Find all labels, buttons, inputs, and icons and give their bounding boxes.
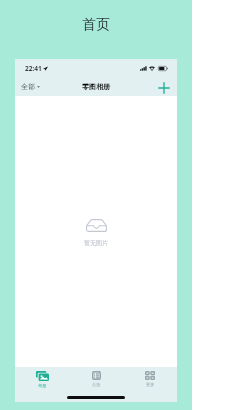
button[interactable]: 更多 <box>123 367 177 391</box>
staticText: 全部 <box>21 82 35 91</box>
button[interactable]: Add album <box>157 81 171 95</box>
staticText: 零图相册 <box>82 82 110 91</box>
button[interactable]: 相册 <box>15 367 69 391</box>
staticText: 首页 <box>82 16 110 34</box>
staticText: 公告 <box>92 382 101 387</box>
button[interactable]: 全部 <box>19 80 42 93</box>
staticText: 更多 <box>146 382 155 387</box>
button[interactable]: 公告 <box>69 367 123 391</box>
staticText: 22:41 <box>25 64 42 73</box>
staticText: 暂无图片 <box>84 239 108 247</box>
staticText: 相册 <box>38 383 47 388</box>
